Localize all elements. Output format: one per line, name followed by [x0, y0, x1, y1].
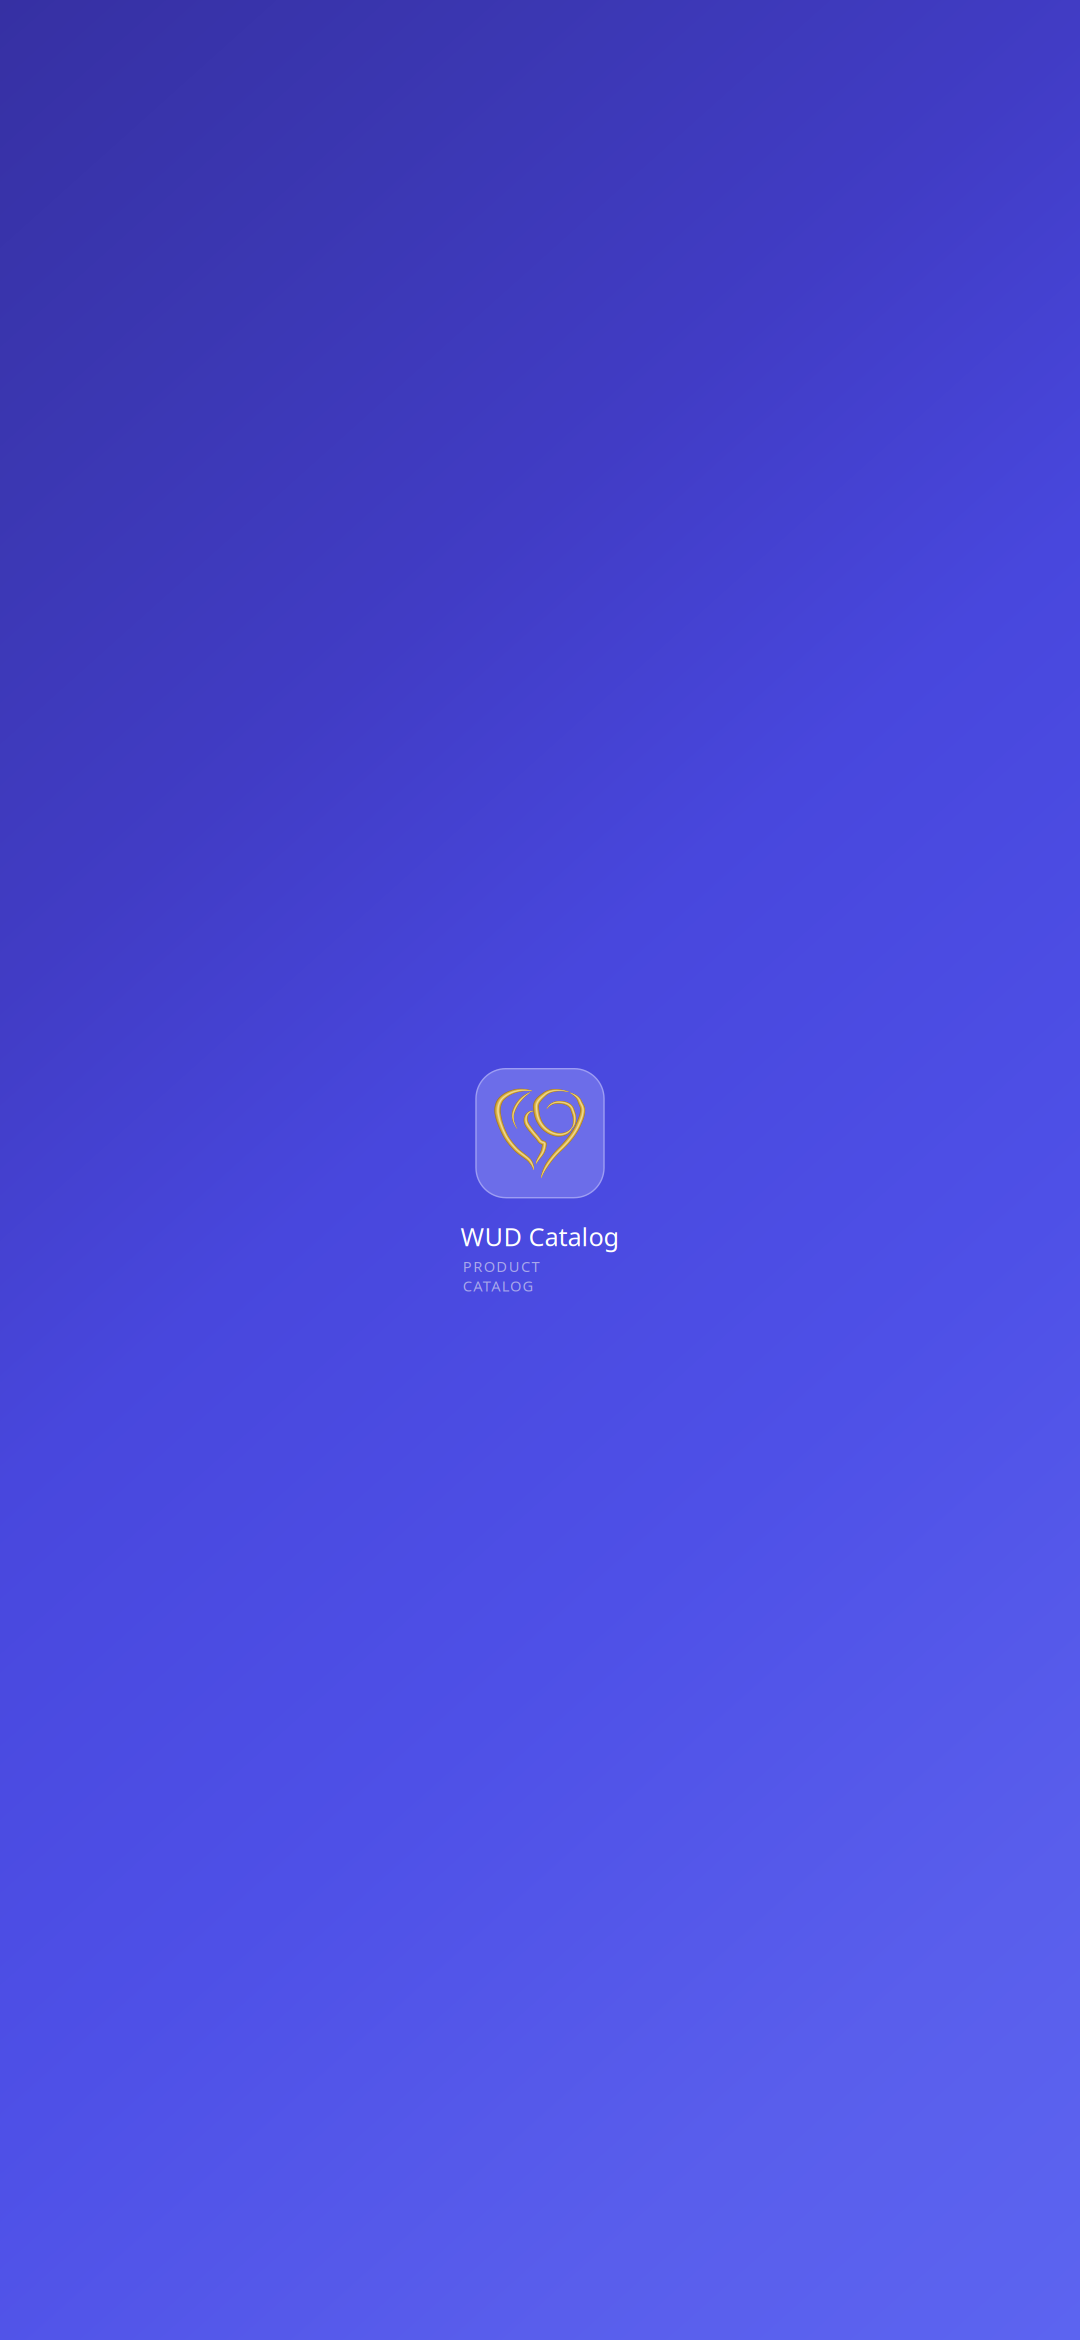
staticText: PRODUCT CATALOG: [463, 1257, 617, 1276]
staticText: WUD Catalog: [460, 1220, 619, 1253]
